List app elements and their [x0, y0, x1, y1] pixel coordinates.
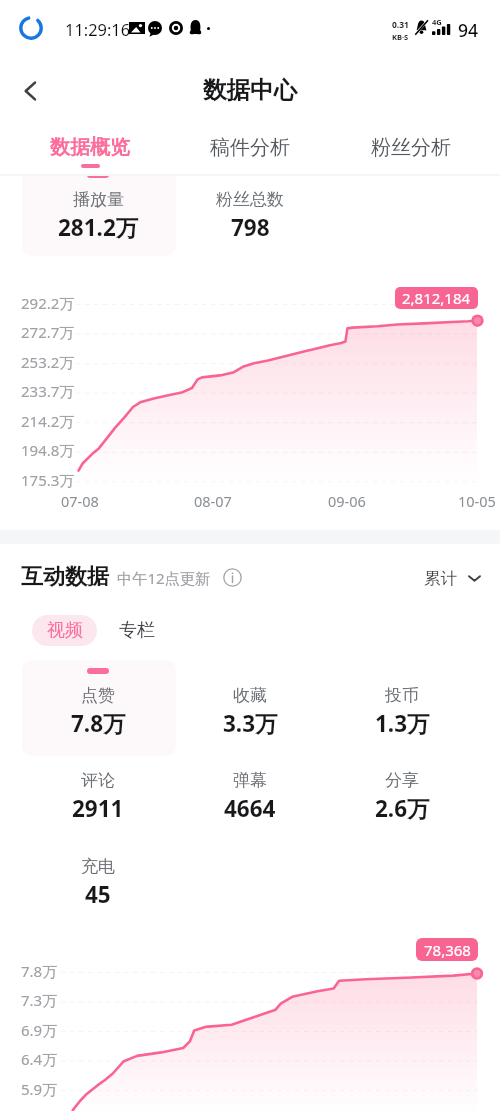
staticText: 数据概览 [50, 135, 130, 160]
staticText: 11:29:16 [65, 18, 131, 40]
button[interactable]: 稿件分析 [190, 124, 310, 170]
staticText: 6.4万 [21, 1049, 58, 1069]
staticText: 292.2万 [21, 293, 75, 313]
staticText: 2911 [72, 793, 124, 824]
staticText: 194.8万 [21, 440, 75, 460]
staticText: 0.31 [392, 19, 409, 31]
staticText: 粉丝分析 [371, 135, 451, 160]
button[interactable] [22, 831, 176, 911]
staticText: 中午12点更新 [117, 568, 211, 589]
staticText: 累计 [424, 568, 457, 589]
staticText: 2.6万 [375, 793, 430, 824]
staticText: 互动数据 [21, 563, 109, 591]
button[interactable]: 数据概览 [30, 124, 150, 170]
button[interactable] [22, 164, 176, 256]
staticText: 09-06 [328, 491, 366, 511]
staticText: 272.7万 [21, 322, 75, 342]
button[interactable]: 视频 [32, 615, 97, 646]
staticText: 253.2万 [21, 352, 75, 372]
staticText: 45 [85, 879, 111, 910]
staticText: 94 [458, 18, 479, 42]
button[interactable] [326, 660, 480, 756]
button[interactable] [22, 745, 176, 825]
staticText: KB·S [392, 32, 409, 42]
button[interactable]: Info [223, 568, 242, 587]
staticText: 视频 [47, 619, 83, 642]
staticText: 分享 [385, 770, 419, 791]
staticText: 10-05 [458, 491, 496, 511]
staticText: 7.8万 [71, 708, 126, 739]
staticText: 播放量 [73, 189, 124, 210]
staticText: 281.2万 [58, 212, 139, 243]
staticText: 233.7万 [21, 381, 75, 401]
staticText: 充电 [81, 856, 115, 877]
button[interactable]: 粉丝分析 [351, 124, 471, 170]
staticText: 粉丝总数 [216, 189, 284, 210]
staticText: 175.3万 [21, 470, 75, 490]
button[interactable] [174, 164, 328, 256]
staticText: 7.8万 [21, 961, 58, 981]
staticText: 2,812,184 [402, 288, 471, 308]
button[interactable] [22, 660, 176, 756]
button[interactable] [174, 660, 328, 756]
staticText: 点赞 [81, 685, 115, 706]
staticText: 4664 [224, 793, 276, 824]
button[interactable] [174, 745, 328, 825]
staticText: 08-07 [194, 491, 232, 511]
staticText: 收藏 [233, 685, 267, 706]
staticText: 78,368 [424, 940, 471, 960]
staticText: 4G [432, 17, 442, 27]
button[interactable]: 专栏 [107, 615, 167, 646]
staticText: 投币 [385, 685, 419, 706]
staticText: 弹幕 [233, 770, 267, 791]
staticText: 798 [231, 212, 270, 243]
staticText: 07-08 [61, 491, 99, 511]
button[interactable]: 累计 [424, 563, 481, 593]
button[interactable] [326, 745, 480, 825]
staticText: 3.3万 [223, 708, 278, 739]
staticText: 稿件分析 [210, 135, 290, 160]
staticText: 数据中心 [203, 75, 297, 105]
staticText: 专栏 [119, 619, 155, 642]
staticText: 214.2万 [21, 411, 75, 431]
staticText: 评论 [81, 770, 115, 791]
staticText: 7.3万 [21, 990, 58, 1010]
staticText: 5.9万 [21, 1079, 58, 1099]
staticText: 1.3万 [375, 708, 430, 739]
staticText: 6.9万 [21, 1020, 58, 1040]
button[interactable]: Back [8, 68, 54, 114]
